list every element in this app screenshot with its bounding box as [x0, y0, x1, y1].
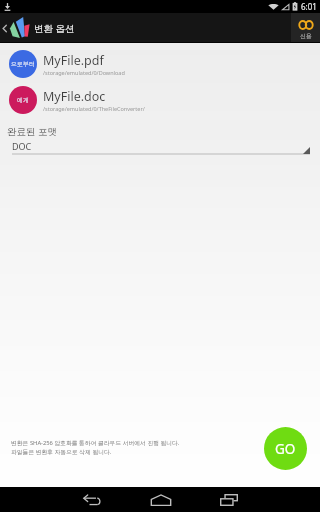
staticText: 완료된 포맷: [7, 125, 57, 138]
staticText: 파일들은 변환후 자동으로 삭제 됩니다.: [11, 448, 112, 456]
staticText: MyFile.pdf: [43, 52, 104, 69]
staticText: MyFile.doc: [43, 88, 106, 105]
staticText: 신용: [300, 32, 312, 40]
button[interactable]: Output format: [12, 139, 310, 156]
button[interactable]: Navigate up: [0, 13, 31, 43]
staticText: GO: [275, 440, 296, 458]
staticText: /storage/emulated/0/Download: [43, 69, 125, 76]
button[interactable]: Back: [68, 487, 116, 512]
staticText: 변환 옵션: [34, 22, 75, 35]
staticText: DOC: [12, 140, 32, 152]
button[interactable]: 에게: [0, 86, 320, 114]
button[interactable]: Credits: [291, 13, 320, 43]
button[interactable]: Recent apps: [205, 487, 253, 512]
staticText: 으로부터: [11, 60, 35, 68]
button[interactable]: 으로부터: [0, 50, 320, 78]
staticText: 에게: [17, 96, 29, 104]
staticText: 변환은 SHA-256 암호화를 통하여 클라우드 서버에서 진행 됩니다.: [11, 439, 180, 447]
staticText: 6:01: [301, 1, 317, 12]
staticText: /storage/emulated/0/TheFileConverter/: [43, 105, 145, 112]
button[interactable]: GO: [264, 427, 307, 470]
button[interactable]: Home: [137, 487, 185, 512]
